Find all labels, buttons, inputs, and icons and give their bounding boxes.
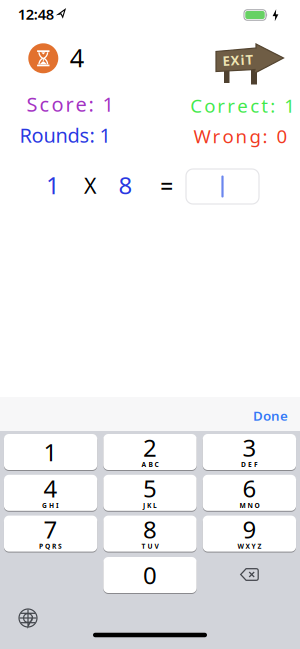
staticText: 12:48: [18, 4, 54, 24]
staticText: 0: [143, 559, 157, 591]
button[interactable]: 4: [4, 474, 97, 512]
staticText: 6: [242, 472, 256, 504]
staticText: 1: [44, 436, 58, 468]
button[interactable]: Next keyboard: [18, 608, 37, 627]
staticText: W X Y Z: [237, 542, 261, 551]
button[interactable]: Delete: [203, 555, 296, 593]
staticText: 1: [46, 169, 60, 201]
button[interactable]: 8: [103, 515, 197, 553]
staticText: A B C: [141, 460, 158, 469]
staticText: P Q R S: [39, 542, 62, 551]
staticText: D E F: [241, 460, 258, 469]
staticText: Rounds: 1: [19, 122, 110, 148]
button[interactable]: 9: [203, 515, 296, 553]
staticText: C o r r e c t : 1: [190, 93, 295, 118]
staticText: =: [160, 171, 173, 201]
staticText: X: [84, 171, 97, 200]
staticText: 4: [44, 472, 58, 504]
button[interactable]: 7: [4, 515, 97, 553]
button[interactable]: 1: [4, 433, 97, 471]
staticText: E X i T: [222, 51, 253, 69]
button[interactable]: 0: [103, 556, 197, 594]
staticText: 7: [44, 513, 58, 545]
staticText: 3: [242, 432, 256, 463]
staticText: T U V: [141, 542, 158, 551]
staticText: M N O: [239, 501, 259, 510]
button[interactable]: 5: [103, 474, 197, 512]
staticText: 8: [143, 513, 157, 545]
button[interactable]: Done: [242, 398, 298, 432]
button[interactable]: Exit: [212, 41, 288, 85]
staticText: G H I: [42, 501, 59, 510]
staticText: W r o n g : 0: [193, 124, 287, 148]
button[interactable]: 2: [103, 433, 197, 471]
staticText: S c o r e : 1: [26, 91, 113, 117]
staticText: 9: [242, 513, 256, 545]
button[interactable]: 3: [203, 433, 296, 471]
staticText: 4: [70, 41, 84, 74]
staticText: 5: [143, 472, 157, 504]
staticText: 8: [118, 169, 132, 201]
staticText: Done: [253, 407, 288, 424]
staticText: 2: [143, 432, 157, 463]
button[interactable]: Answer: [186, 169, 259, 204]
button[interactable]: 6: [203, 474, 296, 512]
staticText: J K L: [143, 501, 157, 510]
